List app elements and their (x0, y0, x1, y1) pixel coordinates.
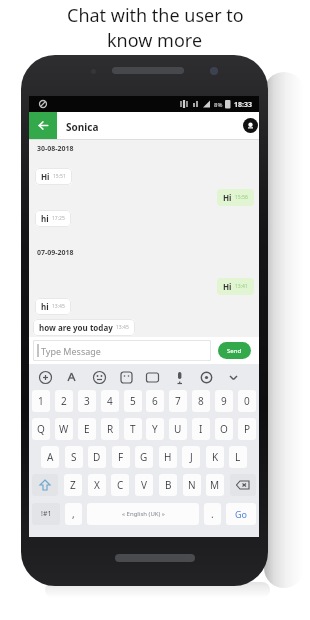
staticText: I (199, 422, 203, 436)
button[interactable]: B (159, 474, 177, 496)
button[interactable]: J (182, 446, 200, 468)
staticText: P (244, 422, 251, 436)
button[interactable] (142, 367, 162, 387)
button[interactable]: Q (32, 418, 50, 440)
button[interactable]: 6 (146, 390, 164, 412)
button[interactable]: !#1 (32, 503, 60, 525)
button[interactable]: Z (64, 474, 82, 496)
staticText: 15:56 (235, 194, 248, 201)
button[interactable]: Send (218, 342, 251, 359)
button[interactable]: 9 (215, 390, 233, 412)
button[interactable]: 7 (169, 390, 187, 412)
button[interactable]: hi (41, 301, 65, 312)
staticText: 1 (38, 394, 44, 408)
staticText: 8 (198, 394, 204, 408)
button[interactable] (35, 367, 55, 387)
staticText: 7 (175, 394, 181, 408)
button[interactable]: Y (146, 418, 164, 440)
button[interactable]: R (101, 418, 119, 440)
staticText: 6 (152, 394, 158, 408)
button[interactable]: Hi (223, 281, 248, 292)
button[interactable]: D (88, 446, 106, 468)
button[interactable]: Type Message (33, 340, 211, 361)
staticText: Q (37, 422, 45, 436)
staticText: 13:45 (116, 324, 129, 331)
button[interactable]: 5 (124, 390, 142, 412)
staticText: R (107, 422, 114, 436)
staticText: Y (152, 422, 158, 436)
staticText: 0 (244, 394, 250, 408)
staticText: Hi (223, 281, 232, 292)
staticText: Sonica (66, 120, 99, 134)
button[interactable]: W (55, 418, 73, 440)
staticText: A (47, 450, 54, 464)
button[interactable] (89, 367, 109, 387)
staticText: K (212, 450, 219, 464)
staticText: F (118, 450, 124, 464)
button[interactable]: P (238, 418, 256, 440)
button[interactable]: G (135, 446, 153, 468)
button[interactable]: I (192, 418, 210, 440)
staticText: 15:51 (53, 173, 66, 180)
button[interactable]: A (41, 446, 59, 468)
staticText: D (93, 450, 101, 464)
staticText: U (174, 422, 182, 436)
button[interactable]: X (88, 474, 106, 496)
button[interactable]: Go (226, 503, 256, 525)
button[interactable] (169, 367, 189, 387)
staticText: B (165, 478, 172, 492)
button[interactable]: Hi (223, 192, 248, 203)
button[interactable]: . (204, 503, 221, 525)
button[interactable]: 4 (101, 390, 119, 412)
button[interactable]: 8 (192, 390, 210, 412)
button[interactable]: 3 (78, 390, 96, 412)
staticText: V (141, 478, 147, 492)
staticText: M (210, 478, 220, 492)
staticText: 13:45 (52, 303, 65, 310)
staticText: J (190, 450, 193, 464)
staticText: Chat with the user to (67, 3, 244, 28)
staticText: H (164, 450, 172, 464)
button[interactable]: 1 (32, 390, 50, 412)
button[interactable]: , (65, 503, 82, 525)
button[interactable] (29, 112, 57, 139)
button[interactable]: S (65, 446, 83, 468)
button[interactable]: U (169, 418, 187, 440)
button[interactable] (62, 367, 82, 387)
staticText: 07-09-2018 (37, 248, 74, 258)
button[interactable]: hi (41, 213, 65, 224)
button[interactable] (32, 474, 58, 496)
button[interactable]: L (229, 446, 247, 468)
button[interactable]: K (206, 446, 224, 468)
button[interactable]: O (215, 418, 233, 440)
button[interactable] (243, 118, 258, 133)
staticText: T (130, 422, 136, 436)
button[interactable] (230, 474, 256, 496)
button[interactable]: N (183, 474, 201, 496)
button[interactable]: M (206, 474, 224, 496)
button[interactable] (223, 367, 243, 387)
button[interactable]: how are you today (39, 322, 129, 333)
button[interactable]: V (135, 474, 153, 496)
staticText: G (140, 450, 148, 464)
button[interactable]: F (112, 446, 130, 468)
staticText: W (59, 422, 69, 436)
button[interactable]: Hi (41, 171, 66, 182)
button[interactable] (116, 367, 136, 387)
staticText: how are you today (39, 322, 113, 333)
staticText: 17:25 (52, 215, 65, 222)
staticText: S (71, 450, 77, 464)
button[interactable]: 0 (238, 390, 256, 412)
staticText: 30-08-2018 (37, 144, 74, 154)
button[interactable]: 2 (55, 390, 73, 412)
button[interactable]: E (78, 418, 96, 440)
staticText: E (84, 422, 90, 436)
button[interactable] (196, 367, 216, 387)
staticText: , (72, 507, 75, 521)
staticText: Type Message (41, 345, 101, 357)
button[interactable]: C (111, 474, 129, 496)
button[interactable]: « English (UK) » (87, 503, 199, 525)
button[interactable]: H (159, 446, 177, 468)
staticText: X (94, 478, 100, 492)
button[interactable]: T (124, 418, 142, 440)
